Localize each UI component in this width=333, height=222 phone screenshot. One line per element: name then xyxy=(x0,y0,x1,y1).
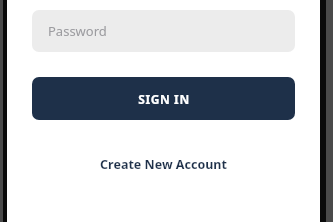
button[interactable]: Password xyxy=(32,10,295,52)
button[interactable]: SIGN IN xyxy=(32,77,295,120)
staticText: SIGN IN xyxy=(138,91,190,107)
button[interactable]: Create New Account xyxy=(7,152,320,177)
staticText: Password xyxy=(48,22,107,40)
staticText: Create New Account xyxy=(100,156,227,173)
